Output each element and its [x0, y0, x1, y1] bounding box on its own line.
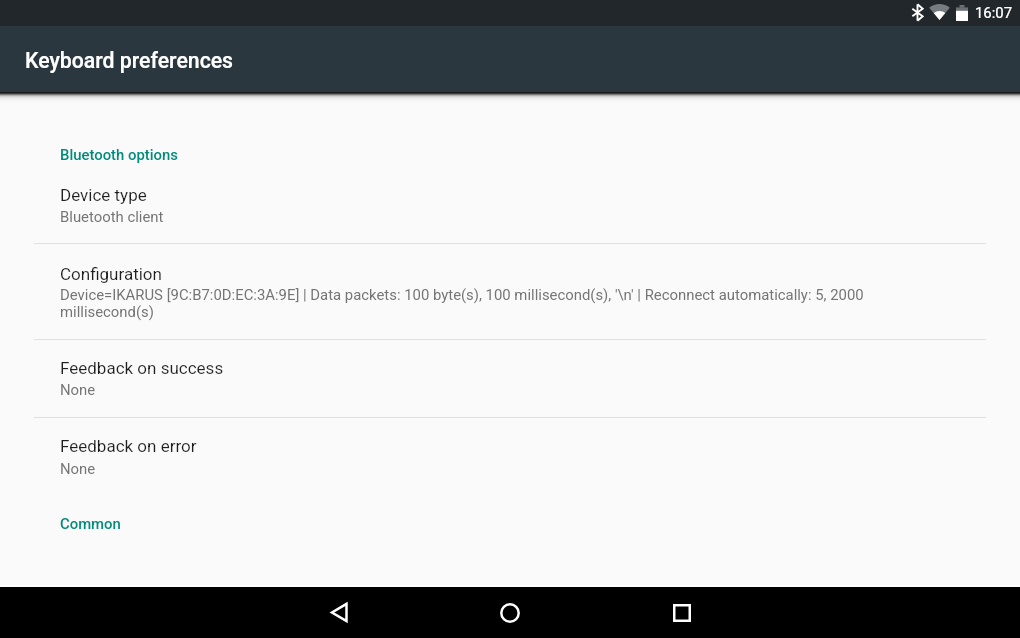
staticText: Keyboard preferences — [25, 48, 234, 73]
staticText: Common — [60, 515, 121, 532]
staticText: Bluetooth options — [60, 146, 178, 163]
button[interactable]: Configuration — [0, 244, 1020, 339]
staticText: None — [60, 460, 96, 477]
staticText: None — [60, 381, 96, 398]
button[interactable]: Feedback on error — [0, 418, 1020, 496]
staticText: Configuration — [60, 264, 162, 284]
staticText: Device type — [60, 185, 147, 205]
other: Wi-Fi connected — [929, 4, 950, 20]
button[interactable]: Feedback on success — [0, 340, 1020, 417]
staticText: Feedback on error — [60, 436, 197, 456]
button[interactable]: Back — [253, 587, 423, 638]
staticText: Bluetooth client — [60, 208, 164, 225]
other: Battery — [956, 5, 968, 21]
button[interactable]: Home — [423, 587, 597, 638]
staticText: Feedback on success — [60, 358, 224, 378]
staticText: Device=IKARUS [9C:B7:0D:EC:3A:9E] | Data… — [60, 286, 915, 320]
other: Bluetooth on — [912, 4, 923, 21]
staticText: 16:07 — [975, 4, 1013, 21]
button[interactable]: Device type — [0, 180, 1020, 242]
button[interactable]: Recent apps — [597, 587, 767, 638]
